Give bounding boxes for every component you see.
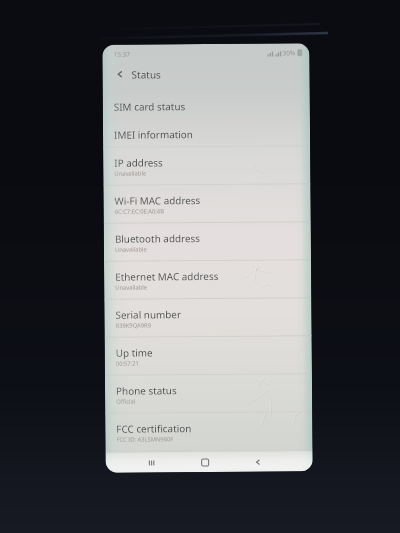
button[interactable]: Ethernet MAC address [104,260,311,300]
staticText: Ethernet MAC address [115,269,219,283]
staticText: 30% [282,48,295,57]
button[interactable]: IMEI information [103,118,310,148]
staticText: Up time [116,345,153,359]
staticText: Unavailable [115,245,147,254]
button[interactable]: IP address [103,146,310,186]
staticText: 6C:C7:EC:0E:A0:4B [115,207,165,216]
staticText: SIM card status [114,99,186,113]
staticText: IP address [114,155,163,169]
button[interactable]: Phone status [105,374,312,414]
other: Back [114,69,126,80]
staticText: 15:37 [113,50,130,59]
staticText: FCC ID: A3LSMN960F [116,435,173,444]
staticText: FCC certification [116,421,192,435]
button[interactable]: Recents [141,452,162,473]
button[interactable]: Serial number [104,298,312,338]
staticText: Phone status [116,383,177,397]
staticText: Official [116,398,136,406]
staticText: IMEI information [114,127,193,141]
button[interactable]: Up time [105,336,312,376]
button[interactable]: FCC certification [105,412,312,452]
button[interactable]: Back [247,451,268,472]
staticText: Unavailable [114,169,146,178]
button[interactable]: SIM card status [103,90,310,120]
staticText: Serial number [115,307,181,321]
staticText: Status [131,67,162,82]
staticText: R39K9QA9R9 [115,321,152,330]
staticText: Wi-Fi MAC address [114,193,201,207]
button[interactable]: Bluetooth address [104,222,311,262]
button[interactable]: Wi-Fi MAC address [103,184,311,224]
button[interactable]: Back [102,60,310,87]
staticText: Unavailable [115,283,147,292]
button[interactable]: Home [194,452,215,472]
staticText: 00:57:21 [116,359,140,368]
staticText: Bluetooth address [115,231,201,245]
